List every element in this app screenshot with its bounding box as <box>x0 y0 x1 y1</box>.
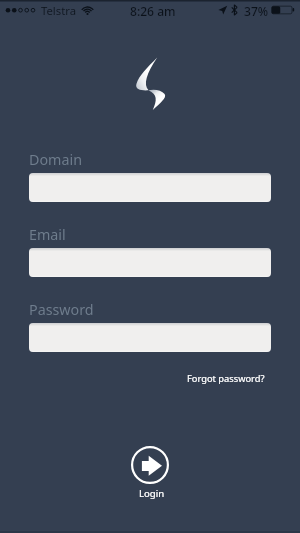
staticText: Telstra <box>41 3 77 18</box>
button[interactable] <box>29 173 271 202</box>
button[interactable] <box>29 248 271 277</box>
button[interactable]: Forgot password? <box>181 368 271 389</box>
button[interactable]: Login <box>120 446 180 500</box>
staticText: Password <box>29 300 94 319</box>
button[interactable] <box>29 323 271 352</box>
other: Login <box>131 446 169 484</box>
staticText: 37% <box>244 3 269 19</box>
staticText: Domain <box>29 150 82 169</box>
staticText: Email <box>29 225 66 244</box>
staticText: Login <box>139 487 165 500</box>
staticText: Forgot password? <box>187 372 265 385</box>
staticText: 8:26 am <box>130 3 176 19</box>
